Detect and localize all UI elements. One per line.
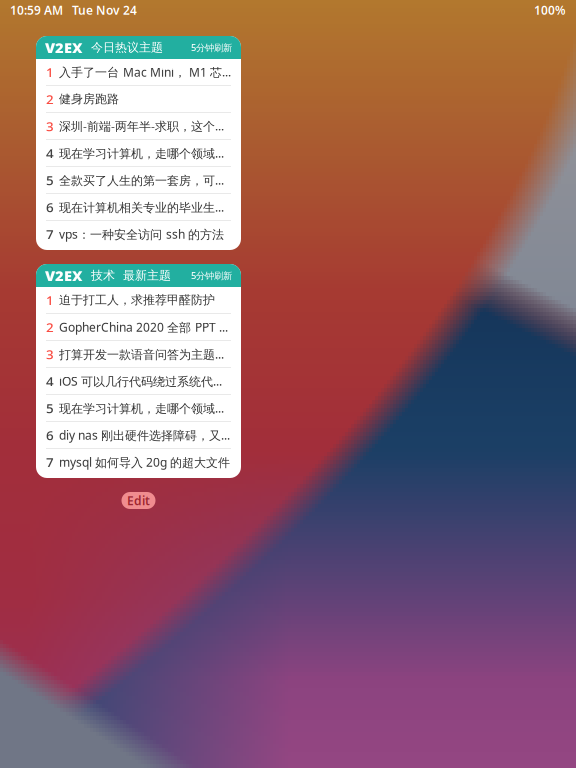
staticText: 7 xyxy=(46,225,54,243)
staticText: V2EX xyxy=(45,38,83,57)
button[interactable]: 1 xyxy=(36,59,241,86)
staticText: 5 xyxy=(46,399,54,417)
staticText: 2 xyxy=(46,90,54,108)
staticText: Edit xyxy=(127,492,150,508)
staticText: 现在学习计算机，走哪个领域会比较有前途? xyxy=(59,400,233,416)
staticText: 技术 最新主题 xyxy=(83,268,171,283)
staticText: 全款买了人生的第一套房，可惜是在越南 xyxy=(59,172,233,188)
staticText: diy nas 刚出硬件选择障碍，又入系统选择障碍，… xyxy=(59,427,233,443)
staticText: 4 xyxy=(46,144,54,162)
staticText: 4 xyxy=(46,372,54,390)
staticText: 打算开发一款语音问答为主题的面试 App，靠谱… xyxy=(59,346,233,362)
button[interactable]: 2 xyxy=(36,86,241,113)
staticText: 今日热议主题 xyxy=(83,40,163,55)
staticText: 1 xyxy=(46,291,54,309)
button[interactable]: 5 xyxy=(36,167,241,194)
button[interactable]: 6 xyxy=(36,422,241,449)
staticText: mysql 如何导入 20g 的超大文件 xyxy=(59,454,230,470)
button[interactable]: Edit xyxy=(121,492,155,509)
button[interactable]: 6 xyxy=(36,194,241,221)
staticText: 10:59 AM Tue Nov 24 xyxy=(10,2,137,18)
button[interactable]: 1 xyxy=(36,287,241,314)
button[interactable]: 7 xyxy=(36,221,241,248)
button[interactable]: 7 xyxy=(36,449,241,476)
button[interactable]: 5 xyxy=(36,395,241,422)
staticText: 入手了一台 Mac Mini， M1 芯片版本的，如果你… xyxy=(59,64,233,80)
staticText: V2EX xyxy=(45,266,83,285)
staticText: 现在计算机相关专业的毕业生都去哪了，招个 Py… xyxy=(59,199,233,215)
staticText: vps：一种安全访问 ssh 的方法 xyxy=(59,226,224,242)
button[interactable]: 3 xyxy=(36,341,241,368)
button[interactable]: 3 xyxy=(36,113,241,140)
staticText: 6 xyxy=(46,426,54,444)
button[interactable]: 4 xyxy=(36,140,241,167)
staticText: 100% xyxy=(534,2,566,18)
staticText: 6 xyxy=(46,198,54,216)
staticText: 现在学习计算机，走哪个领域会比较有前途? xyxy=(59,145,233,161)
staticText: 迫于打工人，求推荐甲醛防护 xyxy=(59,293,215,307)
staticText: 深圳-前端-两年半-求职，这个月找不到工作就要… xyxy=(59,118,233,134)
staticText: iOS 可以几行代码绕过系统代理, 为什么大家都不… xyxy=(59,373,233,389)
staticText: 5分钟刷新 xyxy=(191,41,232,54)
button[interactable]: 2 xyxy=(36,314,241,341)
button[interactable]: 4 xyxy=(36,368,241,395)
staticText: 5 xyxy=(46,171,54,189)
staticText: 1 xyxy=(46,63,54,81)
staticText: GopherChina 2020 全部 PPT 来了 xyxy=(59,319,233,335)
staticText: 3 xyxy=(46,117,54,135)
staticText: 3 xyxy=(46,345,54,363)
staticText: 2 xyxy=(46,318,54,336)
staticText: 5分钟刷新 xyxy=(191,269,232,282)
staticText: 7 xyxy=(46,453,54,471)
staticText: 健身房跑路 xyxy=(59,92,119,106)
